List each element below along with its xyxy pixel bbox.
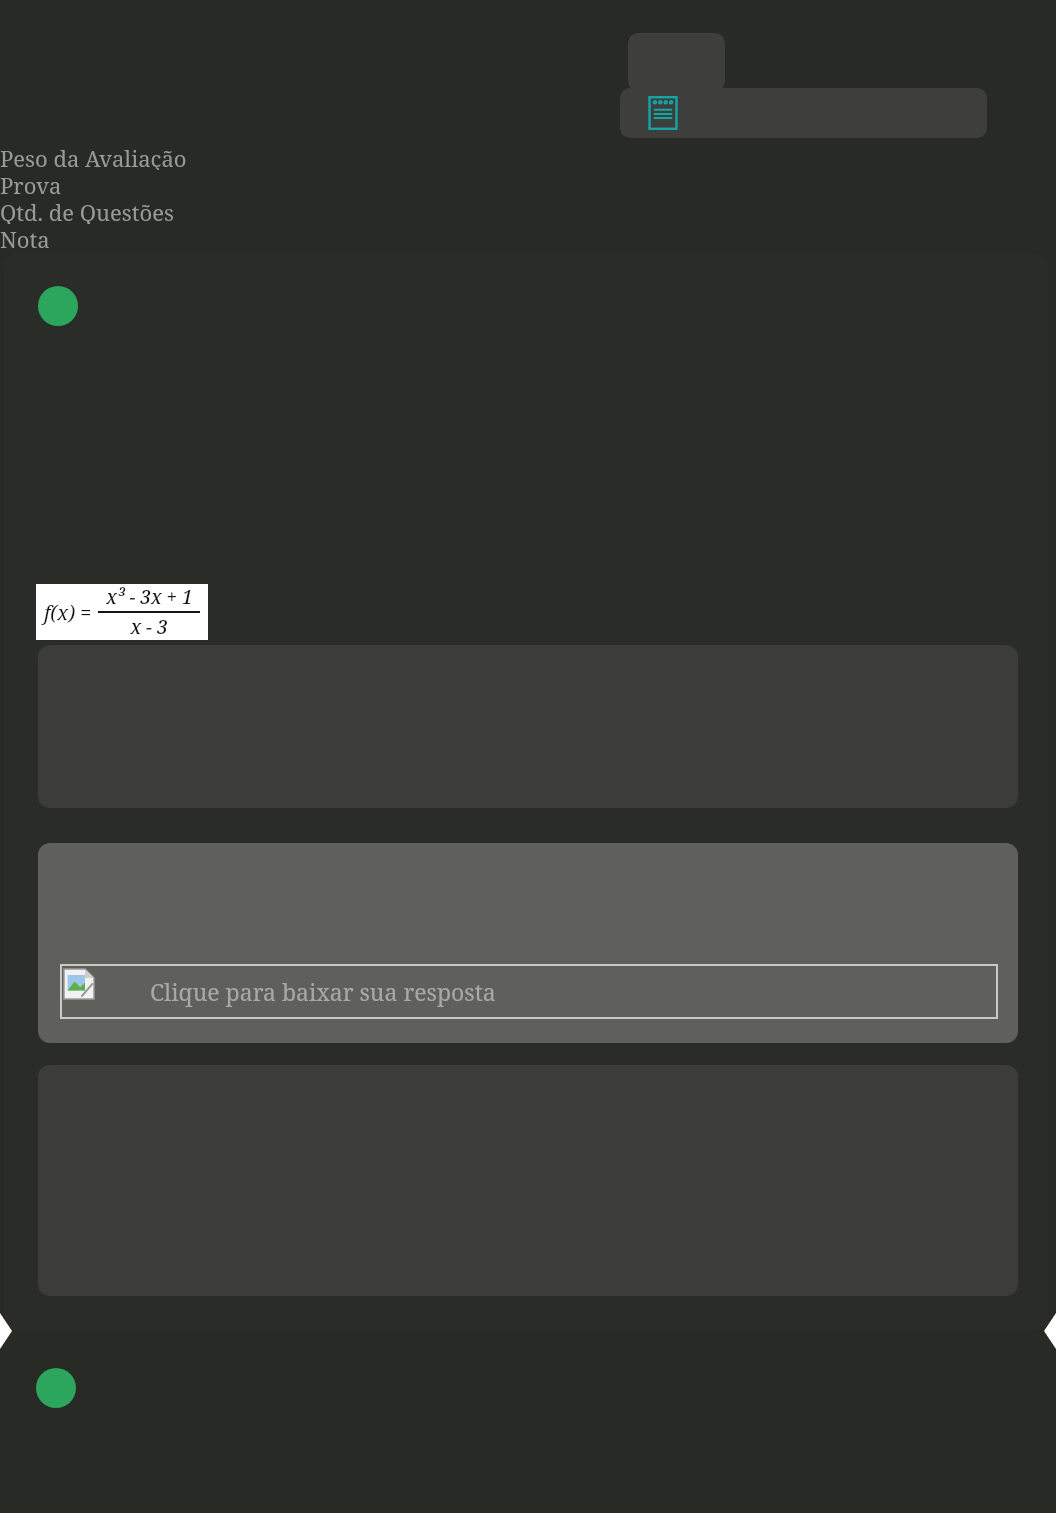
staticText: f(x) = <box>44 599 92 626</box>
staticText: x − 3 <box>130 614 168 640</box>
staticText: Prova <box>0 170 62 197</box>
button[interactable]: Abrir lista de questões <box>644 94 682 132</box>
staticText: Clique para baixar sua resposta <box>150 976 496 1007</box>
button[interactable] <box>36 1368 76 1408</box>
staticText: Qtd. de Questões <box>0 197 174 224</box>
staticText: x³ − 3x + 1 <box>106 584 193 610</box>
button[interactable]: Clique para baixar sua resposta <box>60 964 998 1019</box>
staticText: Nota <box>0 224 50 251</box>
staticText: Peso da Avaliação <box>0 143 187 170</box>
